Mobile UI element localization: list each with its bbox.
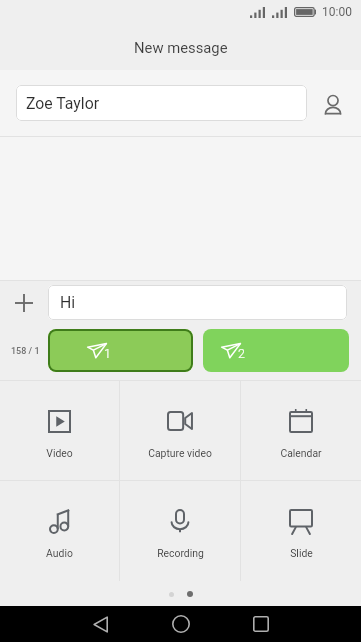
staticText: 158 / 1: [11, 346, 40, 357]
staticText: New message: [134, 39, 228, 56]
button[interactable]: Audio: [0, 481, 119, 581]
button[interactable]: Recent apps: [239, 606, 283, 642]
staticText: Capture video: [148, 447, 212, 459]
button[interactable]: Slide: [241, 481, 361, 581]
button[interactable]: Capture video: [120, 381, 240, 480]
staticText: Zoe Taylor: [26, 94, 100, 113]
staticText: Audio: [46, 547, 73, 559]
button[interactable]: Video: [0, 381, 119, 480]
button[interactable]: Hi: [48, 285, 347, 320]
button[interactable]: Recording: [120, 481, 240, 581]
staticText: Calendar: [280, 447, 322, 459]
button[interactable]: Send with SIM 2: [203, 329, 349, 372]
button[interactable]: Send with SIM 1: [48, 329, 193, 372]
staticText: Recording: [157, 547, 204, 559]
button[interactable]: Choose contact: [310, 82, 356, 128]
button[interactable]: Add attachment: [5, 284, 43, 322]
staticText: Hi: [60, 293, 76, 312]
button[interactable]: Back: [78, 606, 122, 642]
staticText: 1: [104, 346, 111, 361]
staticText: Slide: [290, 547, 313, 559]
button[interactable]: Zoe Taylor: [16, 85, 307, 121]
staticText: Video: [46, 447, 73, 459]
staticText: 2: [238, 346, 245, 361]
button[interactable]: Calendar: [241, 381, 361, 480]
button[interactable]: Home: [159, 606, 203, 642]
staticText: 10:00: [322, 5, 352, 19]
